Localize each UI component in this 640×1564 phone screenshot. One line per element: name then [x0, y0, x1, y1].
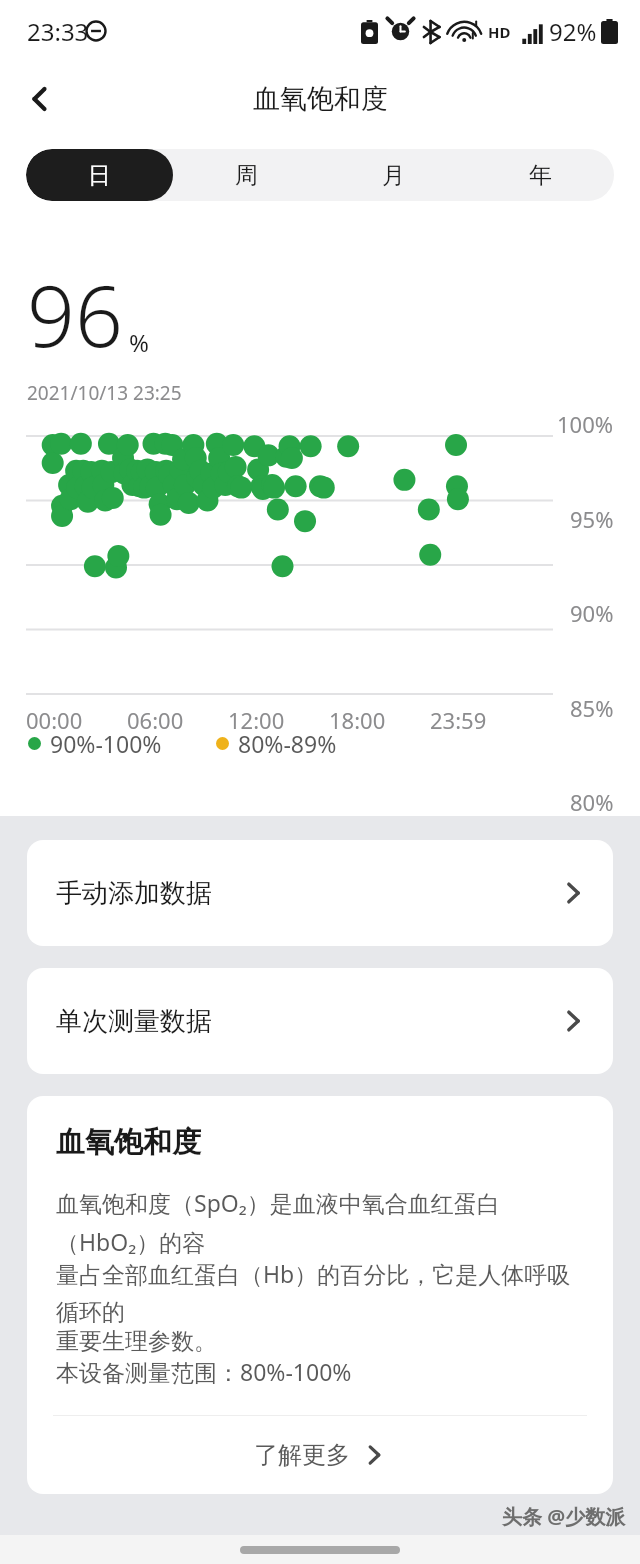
staticText: 00:00: [26, 705, 83, 735]
staticText: 92%: [549, 15, 597, 48]
button[interactable]: 单次测量数据: [27, 968, 613, 1074]
staticText: 血氧饱和度: [253, 82, 388, 116]
staticText: 85%: [570, 693, 614, 723]
staticText: 单次测量数据: [56, 1005, 212, 1038]
staticText: 90%-100%: [50, 728, 162, 759]
staticText: 23:59: [430, 705, 487, 735]
button[interactable]: 周: [173, 149, 320, 201]
staticText: 95%: [570, 504, 614, 534]
staticText: %: [129, 326, 149, 359]
button[interactable]: 手动添加数据: [27, 840, 613, 946]
staticText: 头条 @少数派: [502, 1503, 626, 1530]
staticText: 日: [88, 161, 111, 190]
staticText: 96: [27, 257, 123, 371]
button[interactable]: Back: [14, 73, 66, 125]
button[interactable]: 月: [320, 149, 467, 201]
staticText: 90%: [570, 598, 614, 628]
staticText: 80%: [570, 787, 614, 817]
staticText: 了解更多: [254, 1440, 350, 1470]
staticText: 血氧饱和度: [56, 1124, 201, 1161]
staticText: 重要生理参数。: [56, 1327, 217, 1356]
staticText: 100%: [557, 409, 614, 439]
staticText: 年: [529, 161, 552, 190]
staticText: 本设备测量范围：80%-100%: [56, 1356, 352, 1387]
staticText: HD: [488, 22, 511, 42]
staticText: 血氧饱和度（SpO₂）是血液中氧合血红蛋白（HbO₂）的容: [56, 1187, 584, 1258]
button[interactable]: 日: [26, 149, 173, 201]
staticText: 2021/10/13 23:25: [27, 380, 182, 406]
button[interactable]: 年: [467, 149, 614, 201]
staticText: 手动添加数据: [56, 877, 212, 910]
button[interactable]: 了解更多: [27, 1416, 613, 1494]
staticText: 23:33: [27, 15, 89, 48]
staticText: 12:00: [228, 705, 285, 735]
staticText: 量占全部血红蛋白（Hb）的百分比，它是人体呼吸循环的: [56, 1258, 584, 1327]
staticText: 18:00: [329, 705, 386, 735]
staticText: 周: [235, 161, 258, 190]
staticText: 06:00: [127, 705, 184, 735]
staticText: 月: [382, 161, 405, 190]
staticText: 80%-89%: [238, 728, 337, 759]
